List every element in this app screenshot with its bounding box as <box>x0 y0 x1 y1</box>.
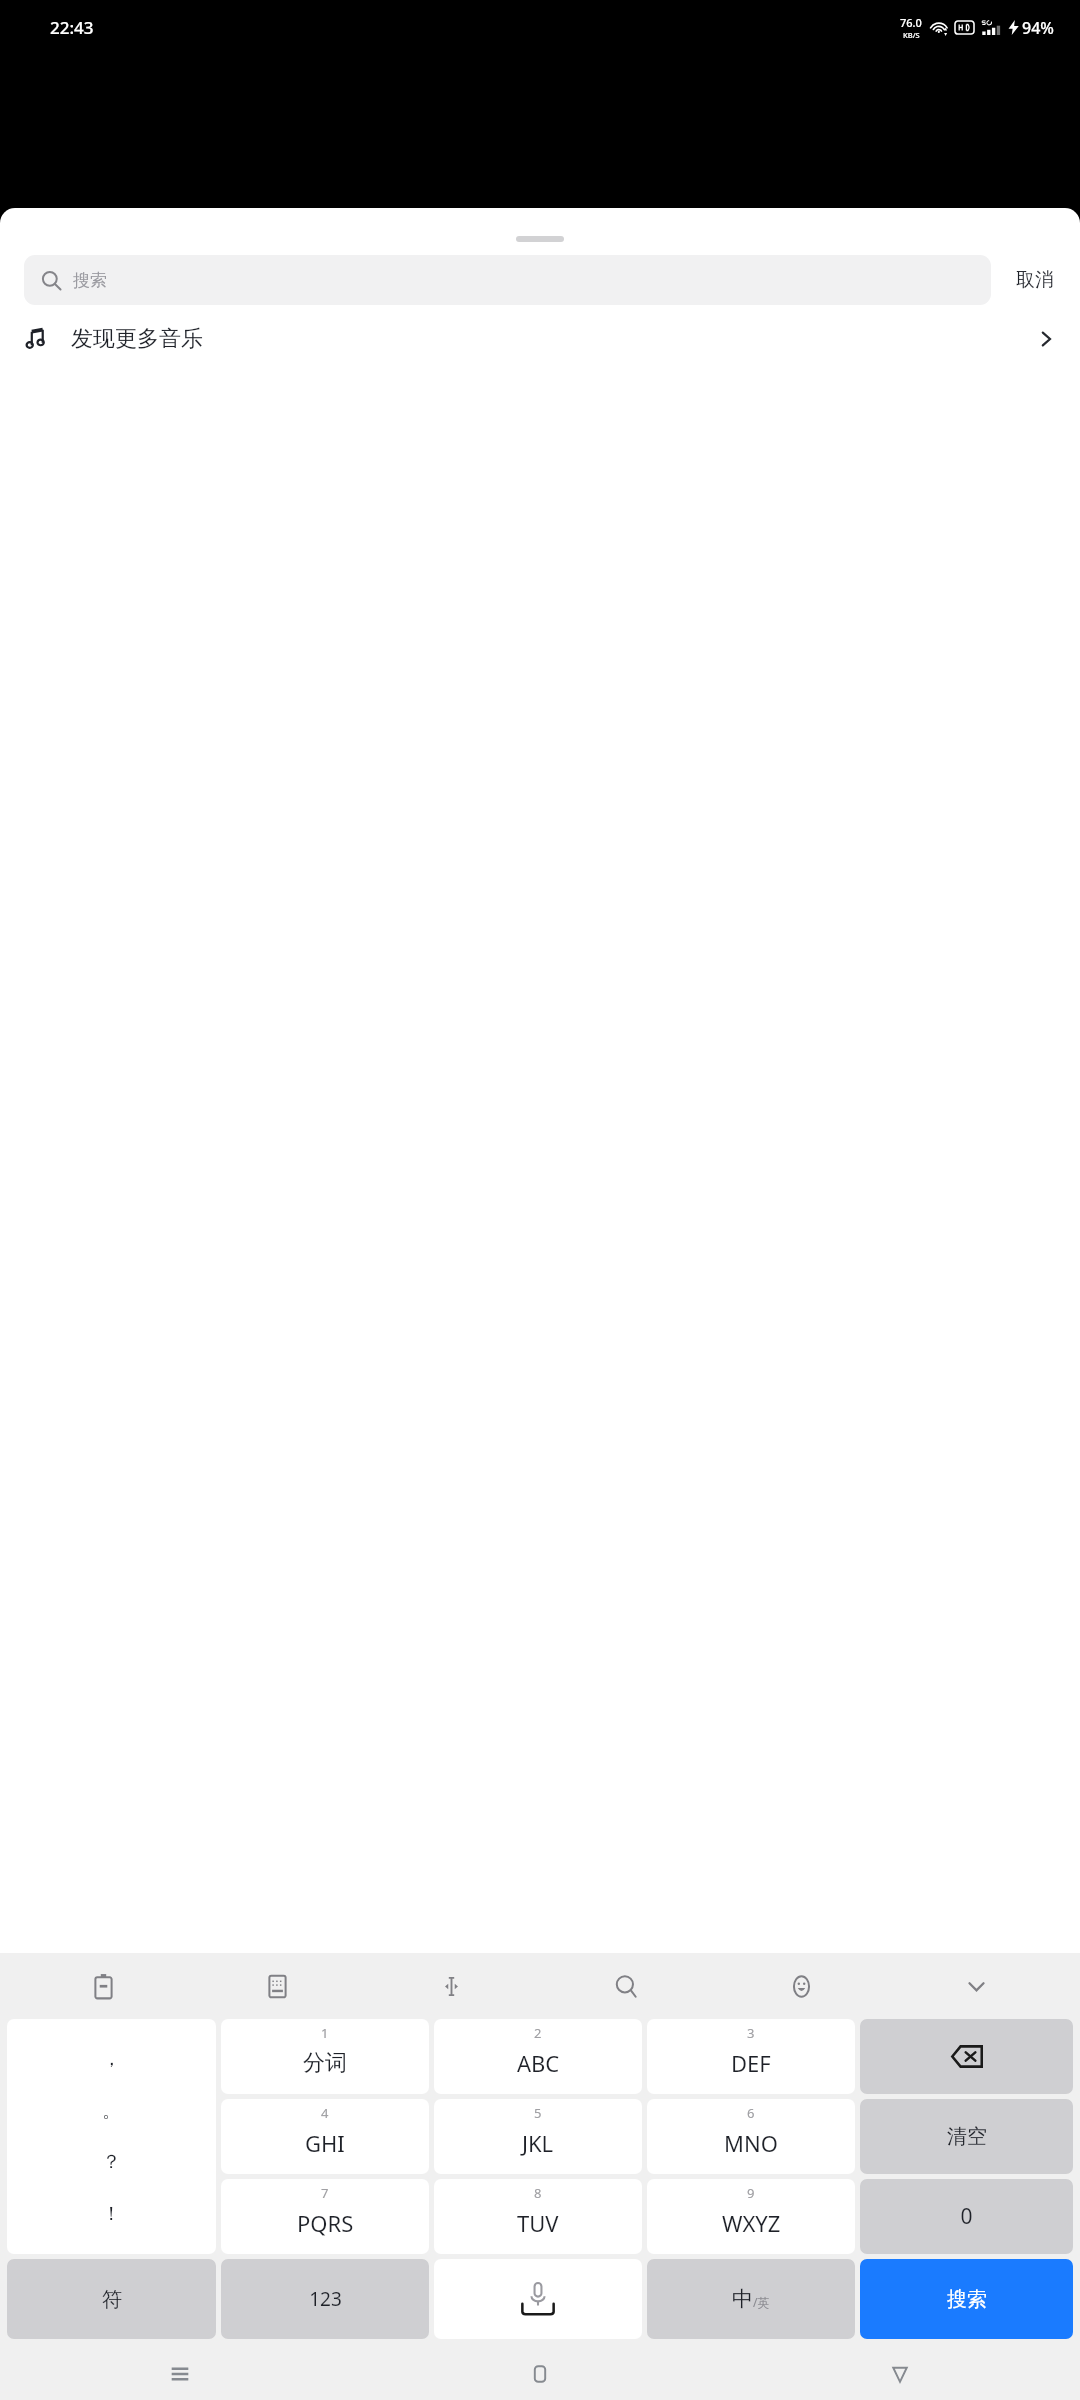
staticText: WXYZ <box>722 2208 781 2238</box>
button[interactable]: Recents <box>0 2347 360 2400</box>
button[interactable]: Hide keyboard <box>889 1953 1064 2019</box>
staticText: 123 <box>309 2286 342 2312</box>
staticText: 22:43 <box>50 16 94 39</box>
staticText: 3 <box>747 2024 755 2042</box>
button[interactable]: 5 <box>434 2099 642 2174</box>
staticText: TUV <box>517 2208 559 2238</box>
staticText: KB/S <box>903 30 920 40</box>
staticText: 。 <box>102 2099 121 2123</box>
staticText: 搜索 <box>947 2287 987 2312</box>
staticText: 符 <box>102 2287 122 2312</box>
button[interactable]: 3 <box>647 2019 855 2094</box>
staticText: DEF <box>731 2048 771 2078</box>
staticText: ABC <box>517 2048 560 2078</box>
button[interactable]: 0 <box>860 2179 1073 2254</box>
staticText: 5 <box>534 2104 542 2122</box>
button[interactable]: 发现更多音乐 <box>0 305 1080 372</box>
button[interactable]: 取消 <box>1014 262 1056 298</box>
staticText: 76.0 <box>900 15 922 30</box>
staticText: /英 <box>753 2294 770 2310</box>
button[interactable]: 1 <box>221 2019 429 2094</box>
button[interactable]: 清空 <box>860 2099 1073 2174</box>
button[interactable]: 6 <box>647 2099 855 2174</box>
staticText: 9 <box>747 2184 755 2202</box>
staticText: 0 <box>960 2202 973 2231</box>
staticText: 4 <box>321 2104 329 2122</box>
staticText: 94% <box>1022 17 1054 39</box>
staticText: 中 <box>732 2286 753 2312</box>
staticText: 搜索 <box>73 270 107 291</box>
button[interactable]: 123 <box>221 2259 429 2339</box>
staticText: GHI <box>305 2128 345 2158</box>
button[interactable]: Keyboard layout <box>190 1953 364 2019</box>
staticText: 7 <box>321 2184 329 2202</box>
button[interactable]: Home <box>360 2347 720 2400</box>
staticText: ！ <box>102 2202 121 2226</box>
button[interactable]: Cursor move <box>364 1953 539 2019</box>
staticText: 2 <box>534 2024 542 2042</box>
button[interactable]: Space, voice input <box>434 2259 642 2339</box>
button[interactable]: 9 <box>647 2179 855 2254</box>
button[interactable]: 符 <box>7 2259 216 2339</box>
button[interactable]: 2 <box>434 2019 642 2094</box>
button[interactable]: Search <box>539 1953 714 2019</box>
staticText: PQRS <box>297 2208 354 2238</box>
button[interactable]: Clipboard <box>16 1953 190 2019</box>
button[interactable]: Emoji <box>714 1953 889 2019</box>
staticText: 取消 <box>1016 268 1054 292</box>
staticText: MNO <box>724 2128 778 2158</box>
button[interactable]: Backspace <box>860 2019 1073 2094</box>
staticText: JKL <box>522 2128 554 2158</box>
staticText: 发现更多音乐 <box>71 325 203 353</box>
button[interactable]: 搜索 <box>860 2259 1073 2339</box>
staticText: ， <box>102 2047 121 2071</box>
staticText: 1 <box>321 2024 329 2042</box>
button[interactable]: 搜索 <box>24 255 991 305</box>
button[interactable]: 中 <box>647 2259 855 2339</box>
staticText: 6 <box>747 2104 755 2122</box>
button[interactable]: Back <box>720 2347 1080 2400</box>
staticText: 分词 <box>303 2049 347 2077</box>
button[interactable]: 7 <box>221 2179 429 2254</box>
button[interactable]: ， <box>7 2019 216 2254</box>
staticText: 8 <box>534 2184 542 2202</box>
button[interactable]: 4 <box>221 2099 429 2174</box>
staticText: ？ <box>102 2150 121 2174</box>
button[interactable]: 8 <box>434 2179 642 2254</box>
staticText: 清空 <box>947 2124 987 2149</box>
